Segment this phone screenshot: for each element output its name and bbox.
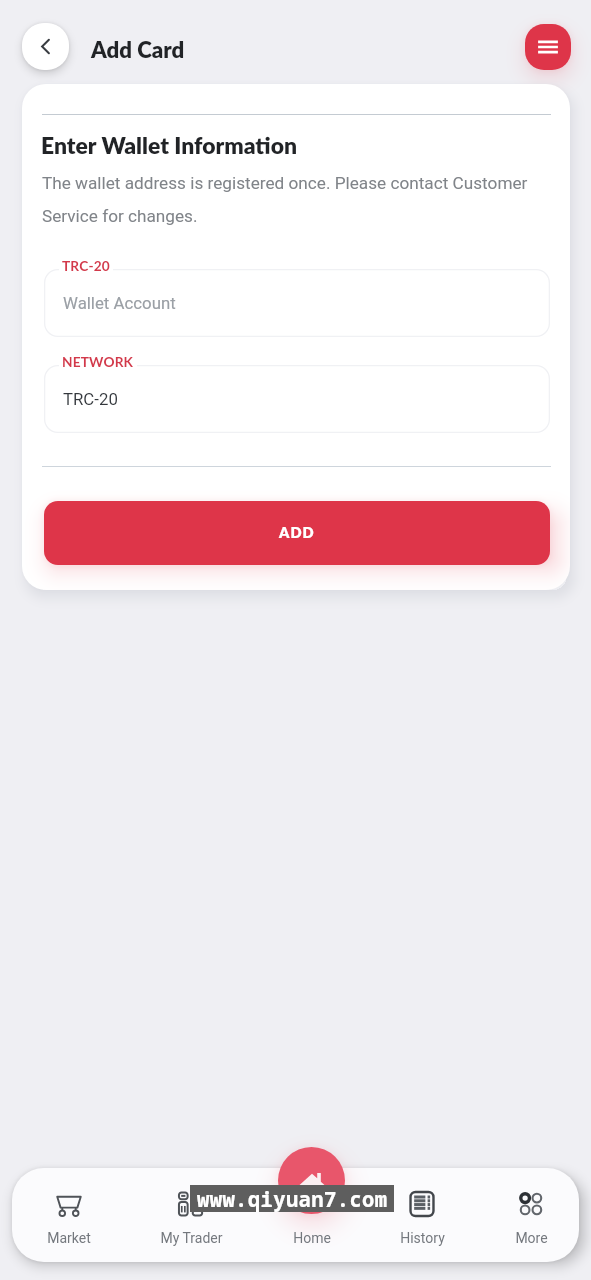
staticText: Market (47, 1230, 91, 1246)
button[interactable]: Market (19, 1168, 119, 1262)
button[interactable]: Home (278, 1147, 345, 1214)
staticText: My Trader (160, 1230, 223, 1246)
staticText: TRC-20 (62, 257, 110, 273)
button[interactable]: ADD (44, 501, 550, 565)
staticText: Home (293, 1230, 331, 1246)
staticText: The wallet address is registered once. P… (42, 173, 542, 226)
staticText: www.qiyuan7.com (197, 1185, 388, 1212)
button[interactable]: Back (22, 23, 69, 70)
button[interactable]: Menu (525, 24, 571, 70)
staticText: NETWORK (62, 353, 134, 369)
staticText: Enter Wallet Information (41, 131, 297, 158)
staticText: Add Card (91, 36, 185, 63)
staticText: Wallet Account (63, 293, 176, 313)
staticText: History (400, 1230, 445, 1246)
button[interactable]: My Trader (141, 1168, 241, 1262)
button[interactable]: More (481, 1168, 581, 1262)
staticText: More (515, 1230, 548, 1246)
button[interactable]: History (372, 1168, 472, 1262)
staticText: ADD (279, 524, 315, 542)
staticText: TRC-20 (63, 389, 118, 409)
button[interactable]: Home (262, 1168, 362, 1262)
button[interactable]: NETWORK (44, 365, 550, 433)
button[interactable]: TRC-20 (44, 269, 550, 337)
